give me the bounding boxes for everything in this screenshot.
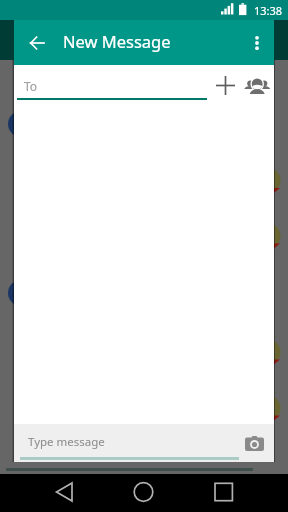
staticText: To bbox=[24, 78, 38, 94]
staticText: New Message bbox=[63, 30, 171, 52]
button[interactable]: Camera bbox=[237, 426, 271, 460]
button[interactable]: Back bbox=[19, 25, 55, 61]
staticText: Type message bbox=[28, 434, 105, 450]
staticText: 13:38 bbox=[254, 3, 283, 18]
button[interactable]: More options bbox=[241, 27, 273, 59]
button[interactable]: Group conversation bbox=[239, 68, 275, 102]
button[interactable]: Add recipient bbox=[208, 68, 243, 103]
